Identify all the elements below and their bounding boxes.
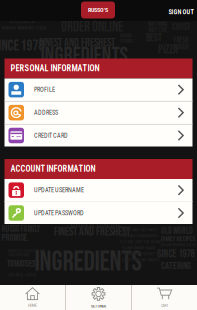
button[interactable]: UPDATE PASSWORD <box>4 202 192 224</box>
staticText: RUSSO FAMILY <box>1 223 40 235</box>
staticText: HOME <box>28 303 37 308</box>
button[interactable]: SETTINGS <box>66 285 131 310</box>
staticText: OLD WORLD <box>161 225 193 237</box>
staticText: INGREDIENTS <box>34 245 141 279</box>
button[interactable]: HOME <box>0 285 65 310</box>
staticText: HAND <box>120 33 132 39</box>
staticText: FRESH <box>173 35 188 45</box>
staticText: UPDATE USERNAME <box>34 186 84 194</box>
staticText: FRESHEST INGREDIENTS, <box>121 234 159 238</box>
staticText: PROFILE <box>34 86 55 93</box>
button[interactable]: CREDIT CARD <box>4 124 192 146</box>
staticText: SINCE 1978 <box>157 248 194 260</box>
button[interactable]: SIGN OUT <box>164 4 197 20</box>
button[interactable]: PROFILE <box>4 78 192 101</box>
staticText: FINEST AND FRESHEST <box>54 225 130 239</box>
staticText: CREDIT CARD <box>34 132 68 139</box>
staticText: ORDER ONLINE <box>70 217 121 231</box>
button[interactable]: ADDRESS <box>4 101 192 124</box>
staticText: TOMATOES <box>7 258 35 270</box>
staticText: BEST <box>146 32 162 44</box>
staticText: AWARD WINNING PIZZA <box>160 243 195 247</box>
staticText: FAMILY RECIPES <box>160 234 195 243</box>
staticText: CART <box>160 303 168 308</box>
staticText: TOSSED <box>119 38 133 44</box>
staticText: CATERING <box>161 260 191 272</box>
staticText: BUT THE <box>148 26 167 34</box>
button[interactable]: UPDATE USERNAME <box>4 179 192 202</box>
staticText: PIZZA <box>158 43 178 57</box>
staticText: HAND-CUT VEGETABLES <box>8 249 44 253</box>
staticText: ACCOUNT INFORMATION <box>10 164 95 174</box>
staticText: SETTINGS <box>91 304 106 308</box>
staticText: EVERYTHING WE CREATE. <box>121 258 160 262</box>
staticText: UPDATE PASSWORD <box>34 209 84 217</box>
staticText: INGREDIENTS <box>40 42 127 70</box>
staticText: SIGN OUT <box>168 8 193 16</box>
staticText: PROMISE. <box>1 232 28 244</box>
staticText: AS FEATURED IN <box>9 20 34 24</box>
staticText: PERSONAL INFORMATION <box>10 64 99 73</box>
staticText: IT IS RUSSO'S SECRET TO <box>120 252 159 256</box>
staticText: RUSSO'S <box>88 6 108 13</box>
staticText: IT IS NOT JUST THE SECRET <box>119 240 162 244</box>
staticText: TO OUR UNIQUE SAUCE, <box>121 246 156 250</box>
staticText: NOTHING <box>148 20 167 28</box>
staticText: DOUGH <box>173 42 188 52</box>
staticText: FINEST AND FRESHEST <box>39 36 115 50</box>
staticText: USING ONLY THE FINEST, <box>121 228 158 232</box>
staticText: AWARD WINNING PIZZA <box>1 25 46 31</box>
staticText: ADDRESS <box>34 109 58 116</box>
button[interactable]: CART <box>132 285 197 310</box>
staticText: CRUST <box>172 21 190 33</box>
staticText: SINCE 1978 <box>0 37 44 55</box>
staticText: ORDER ONLINE <box>61 18 123 36</box>
